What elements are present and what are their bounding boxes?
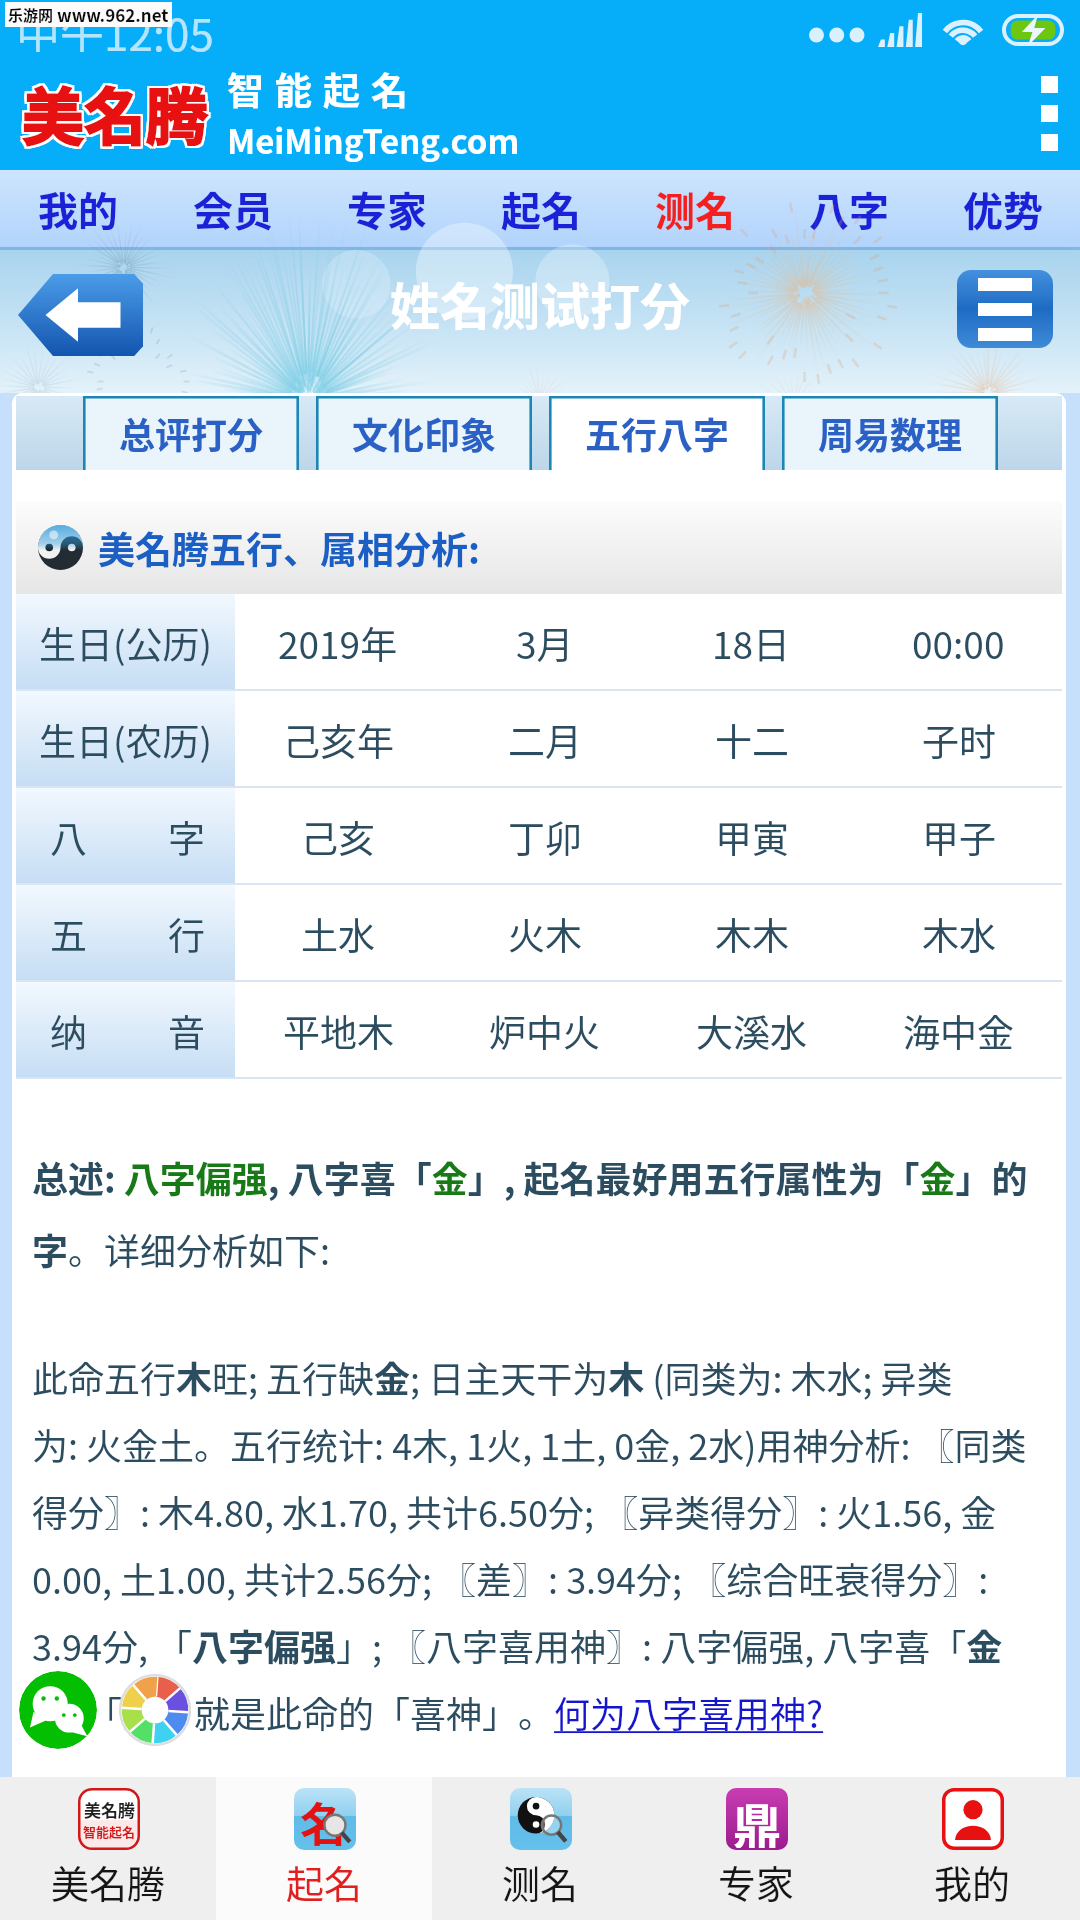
staticText: 美名腾 <box>20 68 207 158</box>
button[interactable]: 名 <box>216 1777 432 1920</box>
staticText: 五 <box>50 907 87 961</box>
button[interactable]: 测名 <box>618 170 772 247</box>
button[interactable]: 鼎 <box>648 1777 864 1920</box>
staticText: 起名 <box>501 180 581 238</box>
staticText: 八字 <box>809 180 889 238</box>
staticText: 木水 <box>922 907 996 961</box>
button[interactable]: 会员 <box>155 170 310 247</box>
button[interactable]: 我的 <box>864 1777 1080 1920</box>
staticText: 丁卯 <box>508 810 582 864</box>
staticText: 平地木 <box>283 1004 394 1058</box>
staticText: 字。详细分析如下: <box>32 1223 339 1275</box>
button[interactable]: 周易数理 <box>782 396 998 470</box>
staticText: 美名腾五行、属相分析: <box>98 521 489 575</box>
staticText: 美名腾 <box>20 70 207 160</box>
staticText: 木木 <box>715 907 789 961</box>
button[interactable]: 总评打分 <box>83 396 299 470</box>
staticText: 鼎 <box>733 1788 782 1848</box>
staticText: 优势 <box>963 180 1043 238</box>
staticText: 18日 <box>712 616 791 670</box>
staticText: 美名腾 <box>51 1854 166 1909</box>
staticText: 八 <box>50 810 87 864</box>
staticText: 名 <box>300 1788 346 1846</box>
button[interactable]: Menu <box>957 270 1053 348</box>
staticText: 文化印象 <box>352 407 497 459</box>
staticText: 土水 <box>301 907 375 961</box>
staticText: 美名腾 <box>22 68 209 158</box>
staticText: www.962.net <box>57 2 169 27</box>
button[interactable]: 文化印象 <box>316 396 532 470</box>
staticText: 中午12:05 <box>16 0 214 52</box>
staticText: 行 <box>168 907 205 961</box>
staticText: 乐游网 <box>8 4 54 26</box>
staticText: 专家 <box>347 180 427 238</box>
staticText: 我的 <box>38 180 118 238</box>
staticText: 总述: 八字偏强, 八字喜「金」, 起名最好用五行属性为「金」的 <box>32 1151 1028 1203</box>
staticText: 美名腾 <box>22 66 209 156</box>
staticText: 智能起名 <box>227 62 419 116</box>
staticText: 纳 <box>50 1004 87 1058</box>
button[interactable]: WeChat share <box>19 1671 97 1749</box>
button[interactable]: 起名 <box>464 170 618 247</box>
staticText: 3月 <box>516 616 574 670</box>
staticText: 智能起名 <box>83 1822 136 1841</box>
staticText: 0.00, 土1.00, 共计2.56分; 〖差〗: 3.94分; 〖综合旺衰得… <box>32 1552 997 1604</box>
button[interactable]: 优势 <box>926 170 1080 247</box>
staticText: 为: 火金土。五行统计: 4木, 1火, 1土, 0金, 2水)用神分析: 〖同… <box>32 1418 1027 1470</box>
staticText: 子时 <box>922 713 996 767</box>
staticText: 」, 「金」就是此命的「喜神」。何为八字喜用神? <box>32 1686 824 1738</box>
staticText: 己亥年 <box>283 713 394 767</box>
button[interactable]: 专家 <box>310 170 464 247</box>
staticText: 周易数理 <box>818 407 963 459</box>
button[interactable]: 我的 <box>0 170 155 247</box>
button[interactable]: Back <box>18 274 143 356</box>
staticText: 二月 <box>508 713 582 767</box>
staticText: 火木 <box>508 907 582 961</box>
staticText: 十二 <box>715 713 789 767</box>
staticText: 会员 <box>193 180 273 238</box>
staticText: 美名腾 <box>84 1797 135 1822</box>
staticText: 甲子 <box>922 810 996 864</box>
button[interactable]: 五行八字 <box>549 396 765 470</box>
button[interactable]: 测名 <box>432 1777 648 1920</box>
staticText: 测名 <box>655 180 735 238</box>
staticText: 五行八字 <box>585 407 730 459</box>
staticText: 00:00 <box>912 616 1005 670</box>
staticText: 我的 <box>934 1854 1011 1909</box>
staticText: 姓名测试打分 <box>390 267 690 339</box>
staticText: 美名腾 <box>22 70 209 160</box>
staticText: 大溪水 <box>696 1004 807 1058</box>
staticText: 生日(农历) <box>39 713 213 767</box>
staticText: 音 <box>168 1004 205 1058</box>
staticText: 2019年 <box>278 616 398 670</box>
staticText: 甲寅 <box>715 810 789 864</box>
staticText: 此命五行木旺; 五行缺金; 日主天干为木 (同类为: 木水; 异类 <box>32 1351 953 1403</box>
staticText: 专家 <box>718 1854 795 1909</box>
button[interactable]: 八字 <box>772 170 926 247</box>
staticText: 3.94分, 「八字偏强」; 〖八字喜用神〗: 八字偏强, 八字喜「金 <box>32 1619 1003 1671</box>
staticText: 海中金 <box>903 1004 1014 1058</box>
staticText: 起名 <box>286 1854 363 1909</box>
button[interactable]: 美名腾 <box>0 1777 216 1920</box>
staticText: 字 <box>168 810 205 864</box>
staticText: 美名腾 <box>24 70 211 160</box>
staticText: 得分〗: 木4.80, 水1.70, 共计6.50分; 〖异类得分〗: 火1.5… <box>32 1485 997 1537</box>
staticText: 己亥 <box>301 810 375 864</box>
button[interactable]: Screenshot <box>119 1674 191 1746</box>
staticText: 生日(公历) <box>39 616 213 670</box>
staticText: MeiMingTeng.com <box>227 116 520 164</box>
staticText: 总评打分 <box>119 407 264 459</box>
staticText: 美名腾 <box>24 68 211 158</box>
staticText: 测名 <box>502 1854 579 1909</box>
staticText: 美名腾 <box>24 66 211 156</box>
staticText: 炉中火 <box>489 1004 600 1058</box>
staticText: 美名腾 <box>20 66 207 156</box>
